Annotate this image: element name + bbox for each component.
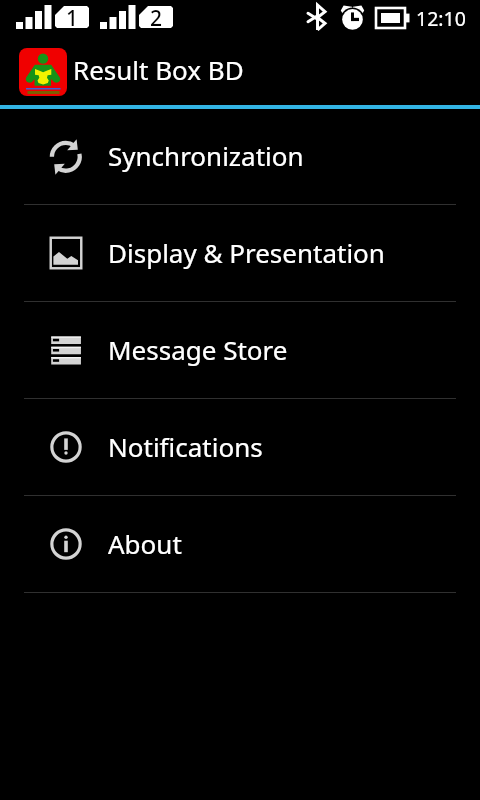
staticText: Result Box BD [73,52,244,87]
other: Synchronization [49,140,83,174]
staticText: 1 [66,4,79,33]
staticText: Message Store [108,332,288,367]
other: Notifications [49,430,83,464]
staticText: Notifications [108,429,263,464]
button[interactable]: Notifications [0,399,480,495]
staticText: About [108,526,182,561]
staticText: 2 [150,4,163,33]
other: About [49,527,83,561]
staticText: 12:10 [416,5,466,32]
button[interactable]: Display and Presentation [0,205,480,301]
button[interactable]: Message Store [0,302,480,398]
other: Message Store [49,333,83,367]
button[interactable]: Synchronization [0,109,480,204]
other: Display and Presentation [49,236,83,270]
staticText: Synchronization [108,138,304,173]
staticText: Display & Presentation [108,235,385,270]
button[interactable]: About [0,496,480,592]
